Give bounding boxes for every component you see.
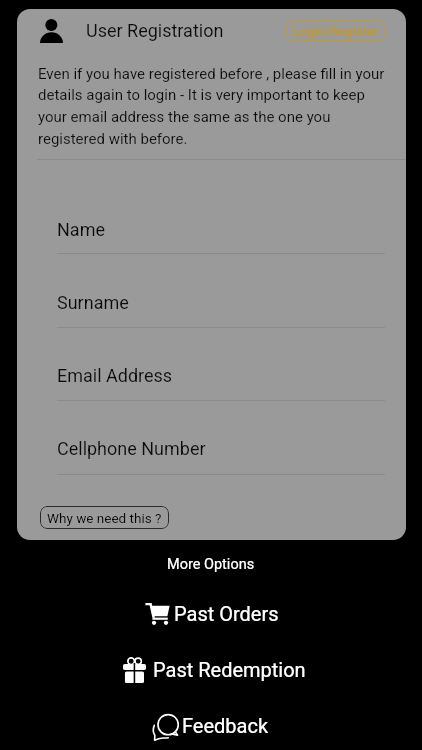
button[interactable]	[0, 655, 422, 685]
other: Account	[40, 19, 63, 43]
staticText: Even if you have registered before , ple…	[38, 65, 389, 148]
staticText: Cellphone Number	[57, 438, 206, 459]
staticText: Email Address	[57, 365, 173, 386]
staticText: Why we need this ?	[47, 510, 162, 526]
staticText: Feedback	[182, 714, 269, 737]
staticText: More Options	[167, 556, 255, 573]
staticText: Name	[57, 219, 105, 240]
staticText: Past Redemption	[153, 658, 306, 681]
button[interactable]: Why we need this ?	[40, 506, 169, 529]
staticText: Login/Register	[293, 24, 379, 39]
button[interactable]: More Options	[0, 550, 422, 578]
staticText: Past Orders	[174, 602, 279, 625]
staticText: User Registration	[86, 20, 224, 41]
button[interactable]	[0, 598, 422, 628]
staticText: Surname	[57, 292, 129, 313]
button[interactable]: Login/Register	[287, 20, 385, 42]
button[interactable]	[0, 711, 422, 741]
